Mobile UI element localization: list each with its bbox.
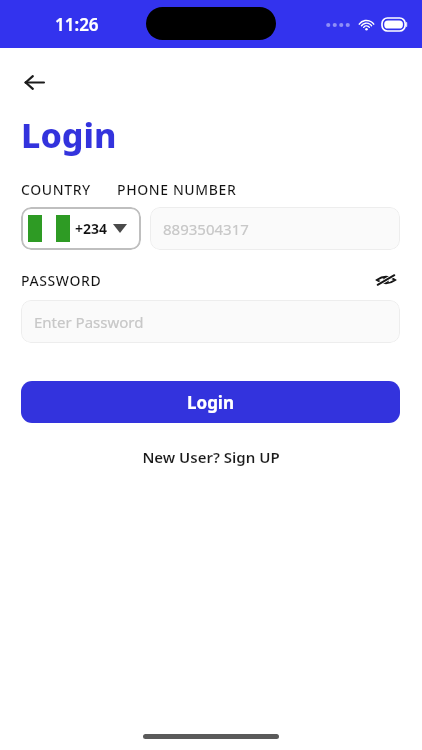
staticText: COUNTRY — [21, 180, 91, 199]
staticText: PASSWORD — [21, 271, 102, 290]
button[interactable]: Back — [16, 64, 52, 100]
button[interactable]: Show password — [372, 266, 400, 294]
staticText: New User? Sign UP — [142, 447, 280, 467]
staticText: Login — [21, 112, 117, 158]
staticText: +234 — [75, 219, 108, 238]
staticText: Enter Password — [34, 312, 144, 332]
staticText: Login — [187, 391, 235, 414]
button[interactable]: Enter Password — [21, 300, 400, 343]
staticText: 11:26 — [55, 13, 99, 36]
staticText: 8893504317 — [163, 219, 249, 239]
button[interactable]: +234 — [21, 207, 141, 250]
button[interactable]: 8893504317 — [150, 207, 400, 250]
button[interactable]: Login — [21, 381, 400, 423]
button[interactable]: New User? Sign UP — [136, 441, 286, 473]
staticText: PHONE NUMBER — [117, 180, 237, 199]
